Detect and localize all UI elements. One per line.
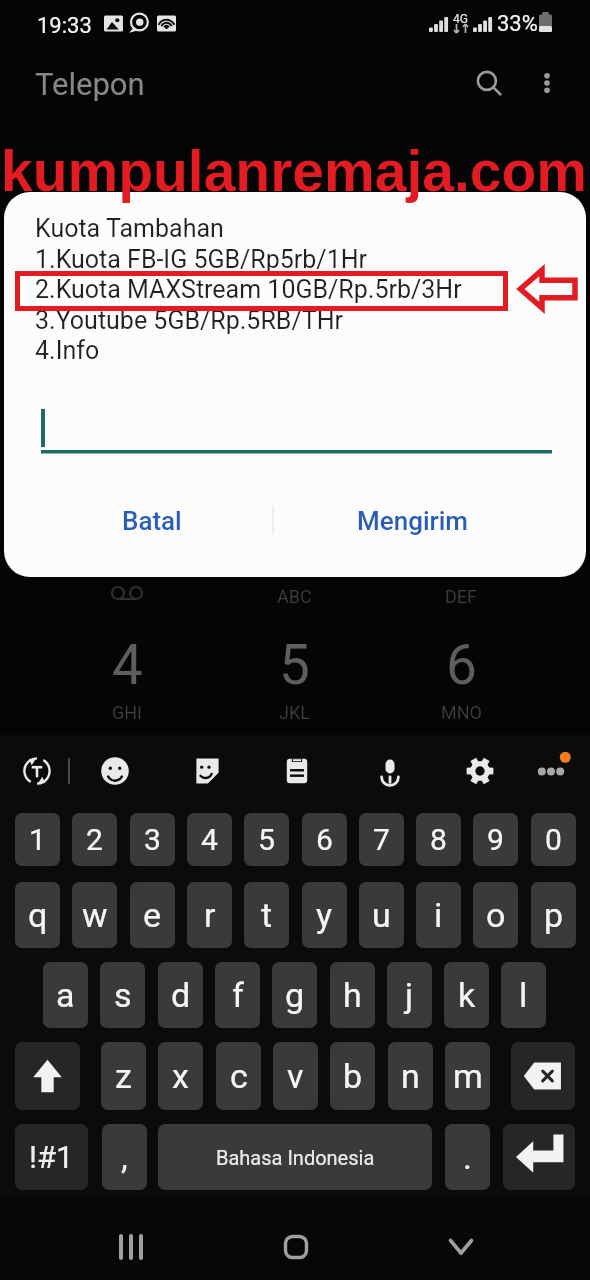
staticText: JKL [279, 702, 310, 723]
button[interactable]: 5 [229, 612, 359, 730]
button[interactable]: z [101, 1042, 146, 1110]
button[interactable]: Stickers [184, 749, 228, 793]
button[interactable]: 7 [359, 813, 404, 866]
staticText: b [343, 1056, 363, 1096]
staticText: 0 [545, 822, 562, 857]
button[interactable]: Recents [101, 1217, 161, 1277]
staticText: 8 [430, 822, 447, 857]
staticText: c [230, 1056, 248, 1096]
staticText: Batal [122, 506, 182, 536]
button[interactable]: More [528, 743, 574, 789]
staticText: kumpulanremaja.com [1, 139, 588, 203]
button[interactable]: y [302, 882, 347, 948]
staticText: 2.Kuota MAXStream 10GB/Rp.5rb/3Hr [35, 275, 462, 304]
staticText: a [56, 975, 75, 1015]
button[interactable]: g [272, 962, 317, 1028]
button[interactable]: j [387, 962, 432, 1028]
staticText: 2 [86, 822, 103, 857]
button[interactable]: e [130, 882, 175, 948]
button[interactable]: Clipboard [275, 749, 319, 793]
staticText: 3 [144, 822, 161, 857]
button[interactable]: a [43, 962, 88, 1028]
button[interactable]: !#1 [15, 1124, 88, 1190]
button[interactable]: 1 [15, 813, 60, 866]
staticText: 6 [446, 633, 477, 697]
staticText: 4 [112, 633, 143, 697]
staticText: d [171, 975, 191, 1015]
button[interactable]: q [15, 882, 60, 948]
button[interactable]: Voice input [368, 749, 412, 793]
button[interactable]: , [102, 1124, 147, 1190]
button[interactable]: 6 [302, 813, 347, 866]
button[interactable]: h [330, 962, 375, 1028]
staticText: y [316, 895, 333, 935]
button[interactable]: Home [266, 1217, 326, 1277]
staticText: Mengirim [357, 506, 468, 536]
button[interactable]: . [445, 1124, 490, 1190]
staticText: i [434, 895, 443, 935]
staticText: 5 [279, 633, 310, 697]
button[interactable]: n [388, 1042, 433, 1110]
button[interactable]: 4 [62, 612, 192, 730]
staticText: 9 [487, 822, 504, 857]
button[interactable]: u [359, 882, 404, 948]
button[interactable]: Enter [503, 1124, 575, 1190]
button[interactable]: 9 [473, 813, 518, 866]
button[interactable]: p [531, 882, 576, 948]
button[interactable]: Search [468, 62, 510, 104]
staticText: o [486, 895, 506, 935]
staticText: f [232, 975, 244, 1015]
staticText: n [401, 1056, 420, 1096]
button[interactable]: b [330, 1042, 375, 1110]
staticText: x [172, 1056, 189, 1096]
button[interactable]: Hide keyboard [431, 1217, 491, 1277]
button[interactable]: k [444, 962, 489, 1028]
staticText: ABC [277, 586, 312, 607]
button[interactable]: c [216, 1042, 261, 1110]
button[interactable]: Batal [36, 490, 268, 552]
button[interactable]: 3 [130, 813, 175, 866]
staticText: !#1 [29, 1139, 74, 1175]
button[interactable]: x [158, 1042, 203, 1110]
button[interactable]: i [416, 882, 461, 948]
button[interactable]: Shift [15, 1042, 80, 1110]
staticText: k [458, 975, 476, 1015]
staticText: e [143, 895, 162, 935]
button[interactable]: Translate [15, 749, 59, 793]
staticText: h [343, 975, 362, 1015]
staticText: GHI [112, 702, 142, 723]
button[interactable]: 6 [396, 612, 526, 730]
button[interactable]: m [445, 1042, 490, 1110]
button[interactable]: s [100, 962, 145, 1028]
staticText: 1 [29, 822, 46, 857]
button[interactable]: 2 [72, 813, 117, 866]
staticText: DEF [445, 586, 477, 607]
staticText: 3.Youtube 5GB/Rp.5RB/THr [35, 306, 343, 335]
staticText: v [287, 1056, 304, 1096]
button[interactable]: v [273, 1042, 318, 1110]
button[interactable]: f [215, 962, 260, 1028]
button[interactable]: w [72, 882, 117, 948]
staticText: , [121, 1137, 128, 1177]
button[interactable]: t [244, 882, 289, 948]
button[interactable]: Bahasa Indonesia [158, 1124, 432, 1190]
button[interactable]: l [501, 962, 546, 1028]
button[interactable]: Mengirim [260, 490, 564, 552]
staticText: Telepon [35, 66, 145, 102]
button[interactable]: 4 [187, 813, 232, 866]
button[interactable]: r [187, 882, 232, 948]
staticText: Bahasa Indonesia [216, 1146, 375, 1169]
staticText: . [463, 1137, 472, 1177]
button[interactable]: 8 [416, 813, 461, 866]
button[interactable]: Settings [458, 749, 502, 793]
button[interactable]: d [158, 962, 203, 1028]
button[interactable]: 0 [531, 813, 576, 866]
button[interactable]: Backspace [511, 1042, 575, 1110]
staticText: r [204, 895, 216, 935]
staticText: 1.Kuota FB-IG 5GB/Rp5rb/1Hr [35, 245, 368, 274]
button[interactable]: More options [526, 62, 568, 104]
button[interactable]: 5 [244, 813, 289, 866]
button[interactable]: Emoji [93, 749, 137, 793]
staticText: 4.Info [35, 336, 100, 365]
button[interactable]: o [473, 882, 518, 948]
